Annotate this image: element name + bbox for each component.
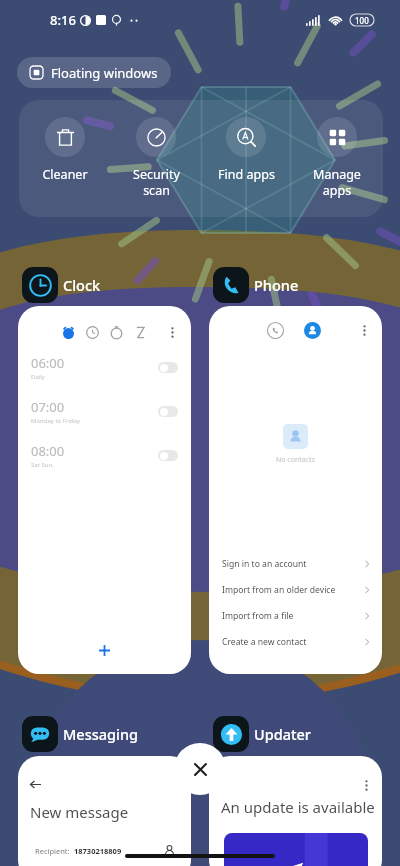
staticText: Phone [254,275,299,295]
button[interactable]: 06:00 [18,306,191,674]
button[interactable]: Back [18,756,191,866]
button[interactable]: Floating windows [17,57,171,88]
button[interactable]: Manage apps [292,117,382,198]
button[interactable]: Find apps [201,117,291,183]
staticText: 08:00 [31,442,65,460]
staticText: Cleaner [42,166,88,183]
button[interactable]: Security scan [111,117,201,198]
button[interactable]: Cleaner [20,117,110,183]
staticText: 100 [355,15,369,26]
staticText: Recipient: [35,846,70,856]
button[interactable]: Updater [213,716,311,752]
staticText: Floating windows [51,64,158,82]
staticText: 06:00 [31,354,65,372]
other: Add alarm [99,645,110,656]
staticText: Import from an older device [222,584,336,596]
staticText: Updater [254,724,311,744]
staticText: Monday to Friday [31,417,81,425]
button[interactable]: No contacts [209,306,382,674]
button[interactable]: Import from an older device [222,577,371,603]
staticText: Create a new contact [222,636,307,648]
staticText: Clock [63,275,101,295]
staticText: Manage apps [313,166,361,198]
staticText: Find apps [218,166,275,183]
staticText: 8:16 [50,11,76,29]
staticText: Daily [31,373,45,381]
staticText: Sign in to an account [222,558,307,570]
staticText: No contacts [276,455,315,465]
button[interactable]: Sign in to an account [222,551,371,577]
button[interactable]: An update is available [209,756,382,866]
staticText: 07:00 [31,398,65,416]
staticText: Sat Sun. [31,461,54,469]
button[interactable]: Close all [174,743,226,795]
button[interactable]: Import from a file [222,603,371,629]
button[interactable]: Messaging [22,716,139,752]
button[interactable]: Toggle alarm [158,362,178,373]
staticText: 18730218809 [74,846,122,856]
button[interactable]: Toggle alarm [158,450,178,461]
button[interactable]: Toggle alarm [158,406,178,417]
staticText: Security scan [133,166,180,198]
button[interactable]: Clock [22,267,101,303]
staticText: An update is available [221,797,375,817]
button[interactable]: Phone [213,267,299,303]
staticText: Import from a file [222,610,294,622]
other: Back [30,779,41,790]
staticText: Messaging [63,724,139,744]
button[interactable]: Create a new contact [222,629,371,655]
staticText: New message [30,802,129,822]
